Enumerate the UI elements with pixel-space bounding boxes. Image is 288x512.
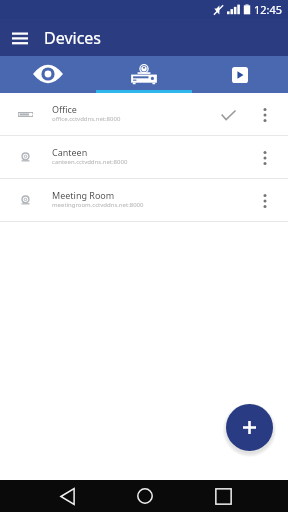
staticText: canteen.cctvddns.net:8000 [52,158,128,166]
button[interactable]: Selected [214,94,242,135]
button[interactable]: Recent apps [207,480,239,512]
button[interactable]: Open navigation menu [0,19,40,56]
button[interactable]: Back [51,480,83,512]
staticText: Meeting Room [52,189,115,201]
button[interactable]: More options [253,137,277,178]
button[interactable]: Add device [226,404,273,451]
staticText: Office [52,103,77,115]
staticText: 12:45 [254,2,283,17]
staticText: Canteen [52,146,88,158]
staticText: office.cctvddns.net:8000 [52,115,121,123]
staticText: meetingroom.cctvddns.net:8000 [52,201,144,209]
button[interactable]: More options [253,94,277,135]
button[interactable]: More options [253,180,277,221]
button[interactable]: Office [0,93,288,136]
button[interactable]: Meeting Room [0,179,288,222]
button[interactable]: Home [129,480,161,512]
button[interactable]: Live view [0,56,96,93]
button[interactable]: Devices [96,56,192,93]
button[interactable]: Playback [192,56,288,93]
staticText: Devices [44,27,102,49]
button[interactable]: Canteen [0,136,288,179]
